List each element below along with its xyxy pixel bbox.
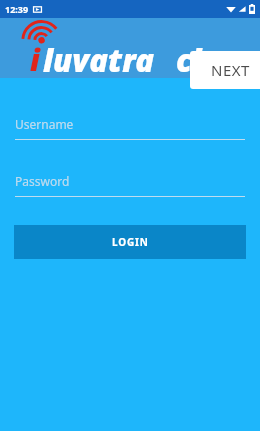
staticText: i xyxy=(30,39,40,80)
staticText: Password xyxy=(15,173,70,189)
button[interactable]: Password xyxy=(15,173,245,197)
staticText: luvatra xyxy=(43,39,154,81)
button[interactable]: LOGIN xyxy=(14,225,246,259)
button[interactable]: Next xyxy=(190,51,260,89)
staticText: NEXT xyxy=(211,60,250,80)
staticText: ck xyxy=(176,39,211,81)
staticText: LOGIN xyxy=(112,235,149,249)
button[interactable]: Username xyxy=(15,116,245,140)
staticText: 12:39 xyxy=(5,3,29,15)
staticText: Username xyxy=(15,116,74,132)
